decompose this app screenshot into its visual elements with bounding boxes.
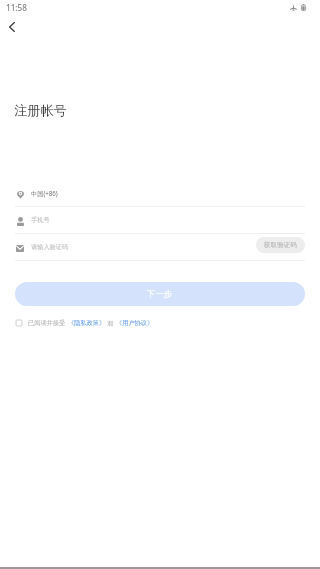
- staticText: 注册帐号: [14, 102, 67, 119]
- staticText: 获取验证码: [264, 241, 297, 249]
- button[interactable]: 下一步: [15, 282, 305, 306]
- staticText: 下一步: [147, 289, 173, 300]
- staticText: 已阅读并接受: [28, 319, 66, 327]
- staticText: 中国(+86): [31, 189, 58, 197]
- staticText: 《隐私政策》: [68, 319, 106, 327]
- staticText: 手机号: [31, 216, 50, 224]
- button[interactable]: 获取验证码: [256, 237, 305, 253]
- staticText: 11:58: [6, 2, 27, 13]
- staticText: 和: [106, 319, 116, 327]
- staticText: 《用户协议》: [116, 319, 154, 327]
- button[interactable]: Accept terms: [16, 319, 154, 327]
- staticText: 请输入验证码: [31, 243, 69, 251]
- other: Accept terms: [16, 320, 22, 326]
- button[interactable]: Back: [2, 17, 22, 37]
